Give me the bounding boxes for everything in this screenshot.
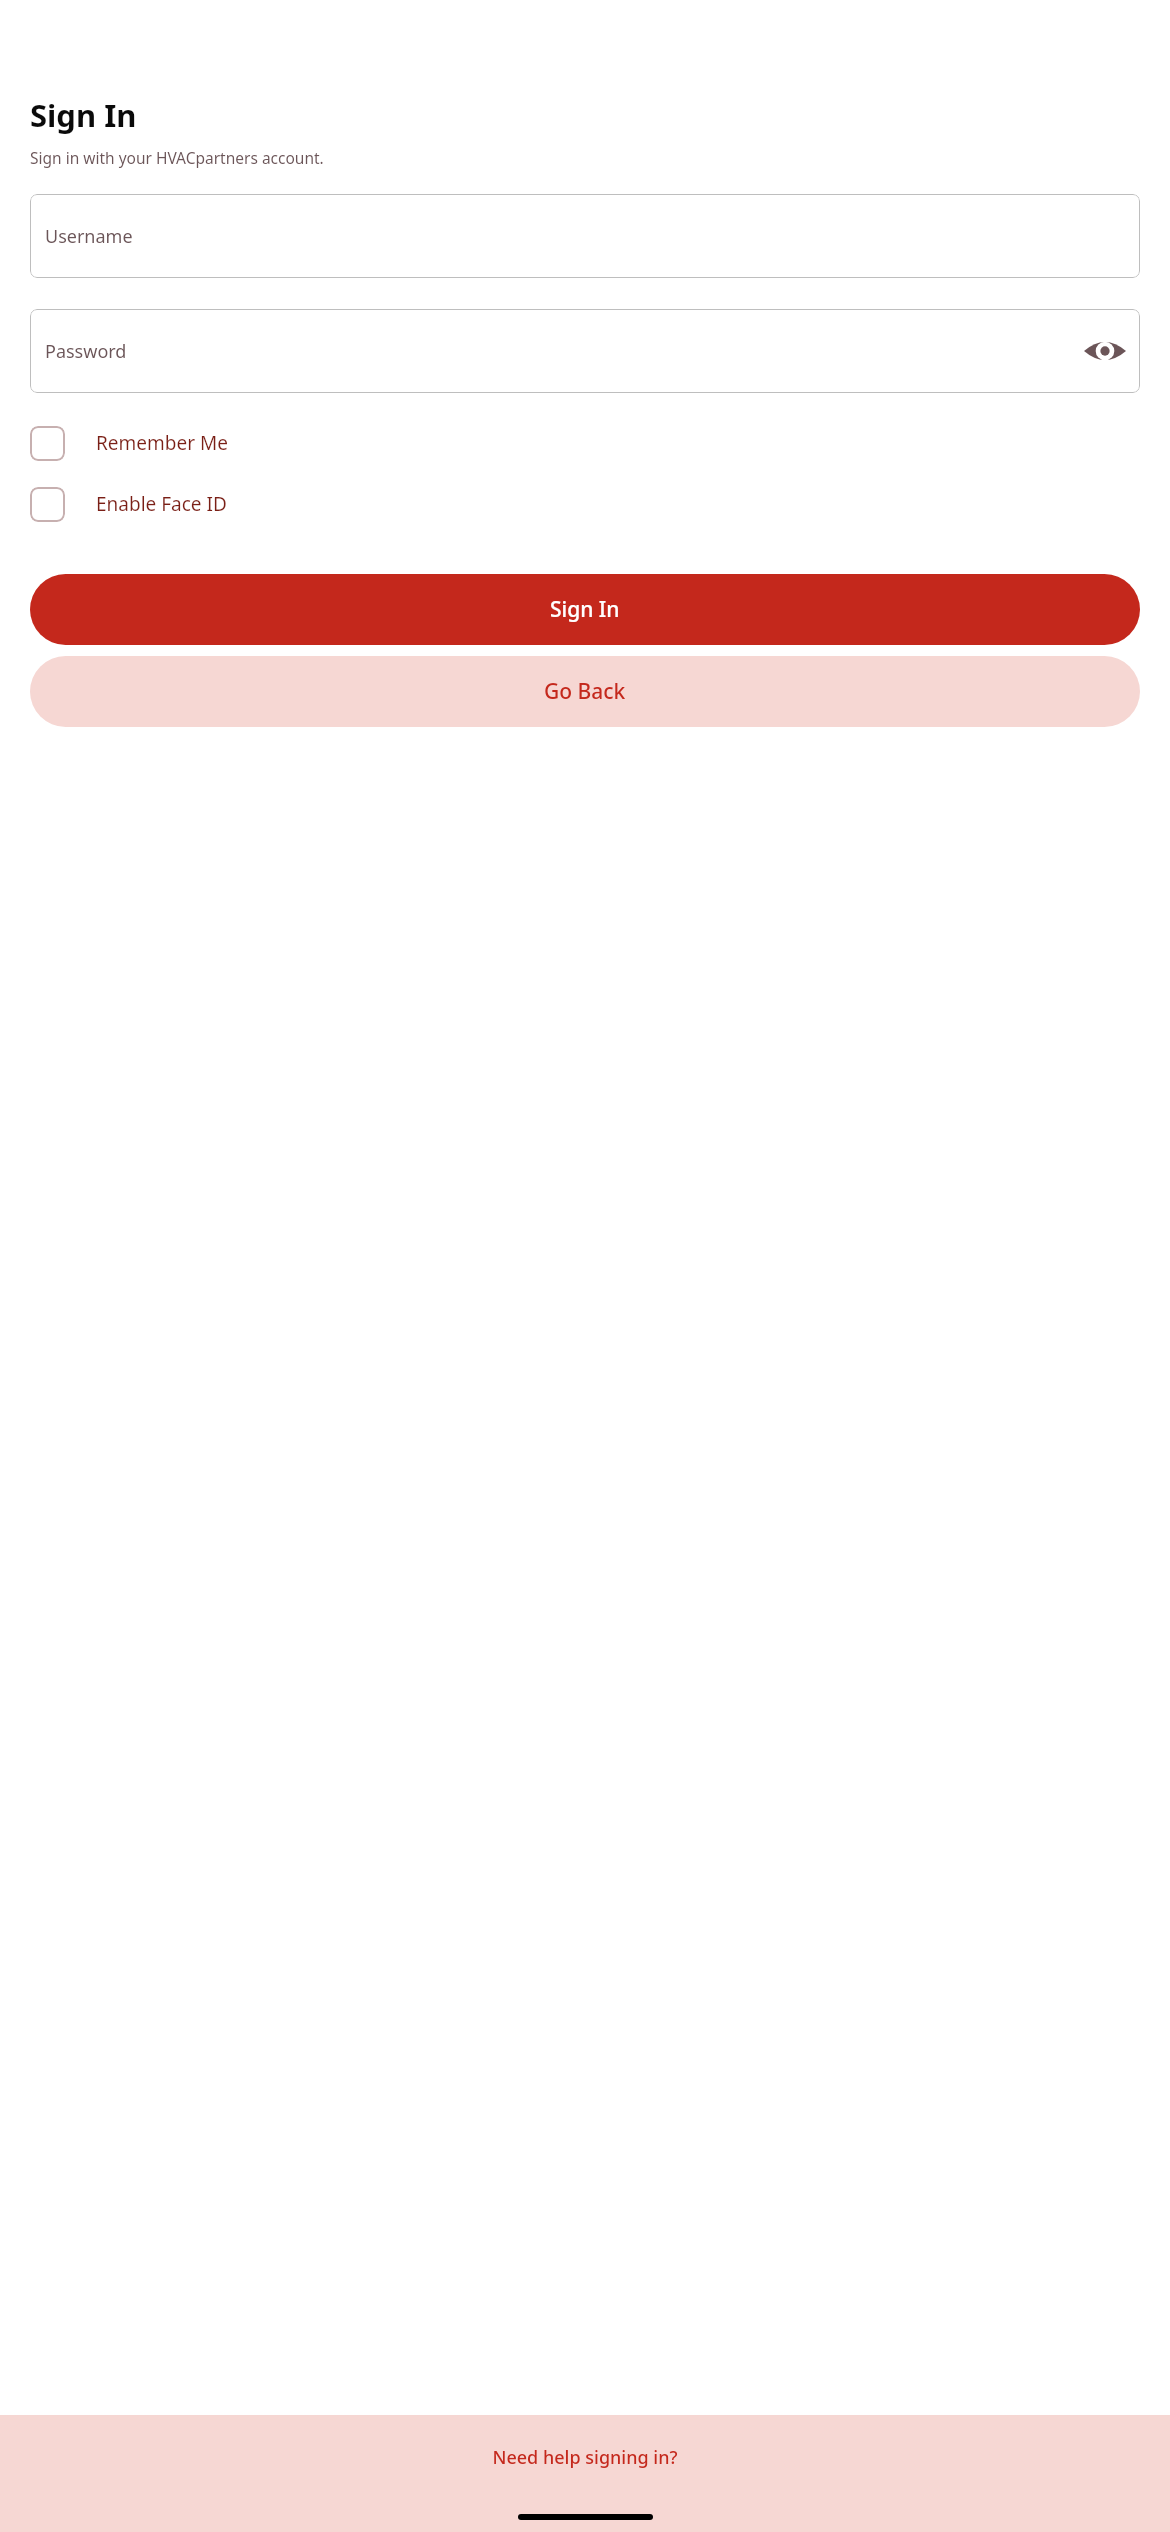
button[interactable]: Username xyxy=(30,194,1140,278)
button[interactable]: Password xyxy=(30,309,1140,393)
staticText: Username xyxy=(45,224,133,249)
staticText: Enable Face ID xyxy=(96,491,227,517)
button[interactable]: Show password xyxy=(1083,329,1127,373)
staticText: Sign In xyxy=(30,94,137,136)
button[interactable]: Remember Me xyxy=(30,420,228,466)
staticText: Sign In xyxy=(550,595,620,624)
staticText: Remember Me xyxy=(96,430,228,456)
button[interactable]: Sign In xyxy=(30,574,1140,645)
staticText: Go Back xyxy=(544,677,626,706)
button[interactable]: Enable Face ID xyxy=(30,481,227,527)
button[interactable]: Go Back xyxy=(30,656,1140,727)
staticText: Sign in with your HVACpartners account. xyxy=(30,147,324,168)
button[interactable]: Need help signing in? xyxy=(492,2445,678,2470)
staticText: Need help signing in? xyxy=(492,2445,678,2470)
staticText: Password xyxy=(45,339,127,364)
